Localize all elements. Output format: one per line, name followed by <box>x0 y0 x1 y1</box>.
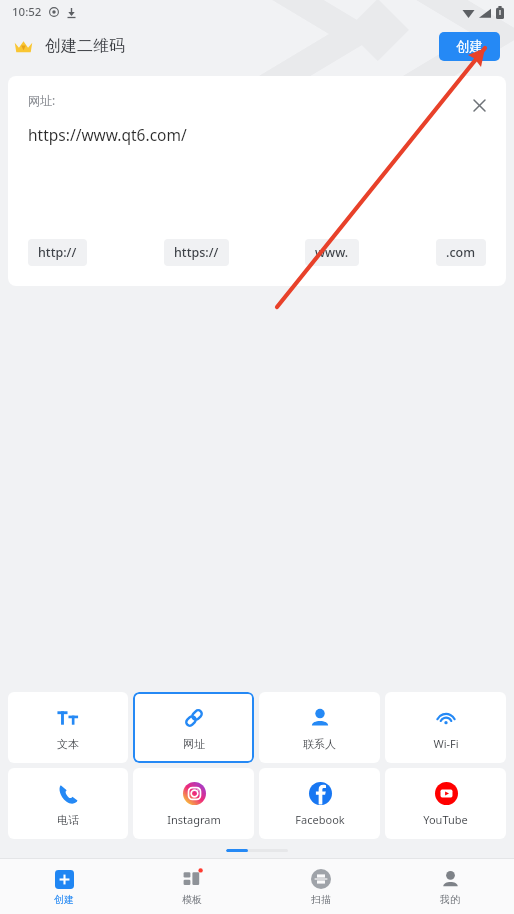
staticText: 网址: <box>28 92 56 108</box>
button[interactable]: Facebook <box>259 768 380 839</box>
staticText: 电话 <box>57 813 79 827</box>
staticText: Instagram <box>167 812 221 827</box>
staticText: Wi-Fi <box>433 736 459 751</box>
staticText: Facebook <box>295 812 345 827</box>
button[interactable]: 创建 <box>439 32 500 61</box>
staticText: 文本 <box>57 737 79 751</box>
staticText: 网址 <box>183 737 205 751</box>
staticText: https://www.qt6.com/ <box>28 124 187 145</box>
staticText: www. <box>315 244 349 261</box>
staticText: 创建 <box>456 38 483 55</box>
staticText: 模板 <box>182 893 202 906</box>
button[interactable]: 电话 <box>8 768 128 839</box>
staticText: YouTube <box>423 812 468 827</box>
button[interactable]: Instagram <box>133 768 254 839</box>
button[interactable]: http:// <box>28 239 87 266</box>
button[interactable]: www. <box>305 239 359 266</box>
button[interactable]: 模板 <box>128 859 256 914</box>
staticText: .com <box>446 244 476 261</box>
button[interactable]: 扫描 <box>256 859 385 914</box>
button[interactable]: Clear <box>466 92 492 118</box>
button[interactable]: YouTube <box>385 768 506 839</box>
staticText: 创建二维码 <box>45 36 125 56</box>
button[interactable]: https:// <box>164 239 229 266</box>
button[interactable]: 创建 <box>0 859 128 914</box>
button[interactable]: Wi-Fi <box>385 692 506 763</box>
staticText: 10:52 <box>12 4 42 20</box>
staticText: 我的 <box>440 893 460 906</box>
button[interactable]: 我的 <box>385 859 514 914</box>
button[interactable]: 联系人 <box>259 692 380 763</box>
button[interactable]: 网址 <box>133 692 254 763</box>
staticText: 联系人 <box>303 737 336 751</box>
staticText: http:// <box>38 244 77 261</box>
button[interactable]: 文本 <box>8 692 128 763</box>
button[interactable]: .com <box>436 239 486 266</box>
staticText: 创建 <box>54 893 74 906</box>
staticText: https:// <box>174 244 219 261</box>
staticText: 扫描 <box>311 893 331 906</box>
